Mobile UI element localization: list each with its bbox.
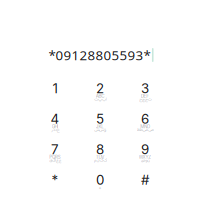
staticText: #	[141, 172, 149, 188]
staticText: *09128805593*	[48, 46, 150, 64]
staticText: 5	[96, 111, 104, 127]
staticText: 6	[141, 111, 149, 127]
button[interactable]: 8	[78, 143, 122, 171]
staticText: 9	[141, 141, 149, 157]
staticText: ع‌غ‌ف‌ق	[49, 157, 61, 164]
staticText: 2	[96, 80, 104, 96]
staticText: WXYZ	[139, 154, 151, 160]
staticText: 8	[96, 141, 104, 157]
staticText: ث‌ج‌چ‌ح	[139, 96, 151, 103]
button[interactable]: 4	[33, 112, 77, 140]
button[interactable]: *	[33, 173, 77, 200]
staticText: GHI	[52, 124, 58, 129]
button[interactable]: 2	[78, 82, 122, 110]
button[interactable]: 0	[78, 173, 122, 200]
staticText: +	[98, 185, 101, 190]
staticText: MNO	[140, 124, 150, 129]
staticText: ص‌ض‌ط‌ظ	[136, 126, 154, 134]
staticText: DEF	[141, 93, 149, 99]
staticText: ABC	[96, 93, 104, 99]
staticText: *	[51, 172, 58, 188]
staticText: 0	[96, 172, 104, 188]
staticText: 7	[51, 141, 59, 157]
button[interactable]: 7	[33, 143, 77, 171]
staticText: ز‌ژ‌س‌ش	[94, 126, 106, 134]
staticText: 1	[52, 80, 57, 96]
staticText: ا‌ب‌پ‌ت	[94, 96, 106, 103]
button[interactable]: 6	[123, 112, 167, 140]
staticText: ن‌و‌ه‌ی	[140, 157, 150, 164]
button[interactable]: #	[123, 173, 167, 200]
staticText: PQRS	[49, 154, 61, 160]
button[interactable]: 1	[33, 82, 77, 110]
staticText: خ‌د‌ذ‌ر	[51, 126, 59, 134]
staticText: 4	[50, 111, 59, 127]
staticText: ک‌گ‌ل‌م	[93, 157, 107, 164]
staticText: JKL	[96, 124, 104, 129]
button[interactable]: 3	[123, 82, 167, 110]
button[interactable]: 5	[78, 112, 122, 140]
staticText: TUV	[96, 154, 104, 160]
staticText: 3	[141, 80, 149, 96]
button[interactable]: 9	[123, 143, 167, 171]
